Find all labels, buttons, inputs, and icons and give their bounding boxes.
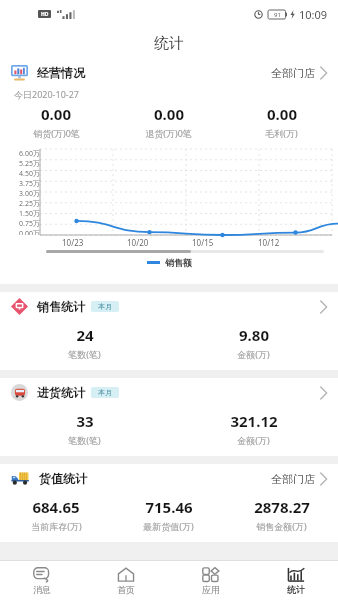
staticText: 今日2020-10-27 (14, 88, 79, 100)
button[interactable]: 统计 (253, 561, 338, 600)
staticText: 金额(万) (237, 348, 270, 360)
staticText: 统计 (287, 584, 305, 595)
button[interactable]: 销售统计 详情 (0, 292, 338, 321)
staticText: 684.65 (32, 497, 80, 517)
staticText: 经营情况 (37, 65, 85, 80)
staticText: 24 (76, 325, 94, 345)
staticText: 0.00 (267, 104, 297, 124)
staticText: 销货(万)0笔 (33, 127, 80, 139)
staticText: 715.46 (145, 497, 193, 517)
staticText: 销售金额(万) (256, 520, 307, 532)
staticText: 销售统计 (37, 299, 85, 314)
staticText: 0.00万 (19, 229, 40, 235)
staticText: 应用 (202, 584, 220, 595)
staticText: 33 (76, 411, 94, 431)
staticText: 货值统计 (39, 471, 87, 486)
staticText: 毛利(万) (265, 127, 298, 139)
staticText: 金额(万) (237, 434, 270, 446)
staticText: 5.25万 (19, 159, 40, 169)
staticText: 3.75万 (19, 179, 40, 189)
staticText: 全部门店 (271, 472, 315, 486)
staticText: 10/23 (62, 237, 84, 248)
staticText: 321.12 (230, 411, 278, 431)
staticText: 笔数(笔) (68, 348, 101, 360)
staticText: 进货统计 (37, 385, 85, 400)
staticText: 当前库存(万) (31, 520, 82, 532)
staticText: 3.00万 (19, 189, 40, 199)
staticText: 10/12 (258, 237, 280, 248)
staticText: 统计 (154, 34, 184, 53)
button[interactable]: 货值统计 全部门店 (0, 464, 338, 493)
staticText: 消息 (33, 584, 51, 595)
button[interactable]: 应用 (168, 561, 253, 600)
staticText: 全部门店 (271, 66, 315, 80)
staticText: 9.80 (239, 325, 269, 345)
staticText: 4.50万 (19, 169, 40, 179)
staticText: 10:09 (299, 7, 328, 22)
button[interactable]: 消息 (0, 561, 84, 600)
staticText: 2.25万 (19, 199, 40, 209)
button[interactable]: 经营情况 全部门店 (0, 58, 338, 87)
staticText: 2878.27 (254, 497, 310, 517)
staticText: 1.50万 (19, 209, 40, 219)
staticText: 笔数(笔) (68, 434, 101, 446)
staticText: HD (41, 11, 49, 18)
staticText: 首页 (117, 584, 135, 595)
staticText: 0.75万 (19, 219, 40, 229)
staticText: 销售额 (165, 257, 192, 268)
staticText: 10/15 (192, 237, 214, 248)
staticText: 6.00万 (19, 149, 40, 159)
staticText: 10/20 (127, 237, 149, 248)
staticText: 91 (274, 11, 281, 19)
staticText: 本月 (98, 388, 112, 397)
button[interactable]: 进货统计 详情 (0, 378, 338, 407)
staticText: 本月 (98, 302, 112, 311)
staticText: 0.00 (154, 104, 184, 124)
staticText: 最新货值(万) (143, 520, 194, 532)
staticText: 0.00 (41, 104, 71, 124)
staticText: 退货(万)0笔 (145, 127, 192, 139)
button[interactable]: 首页 (84, 561, 168, 600)
